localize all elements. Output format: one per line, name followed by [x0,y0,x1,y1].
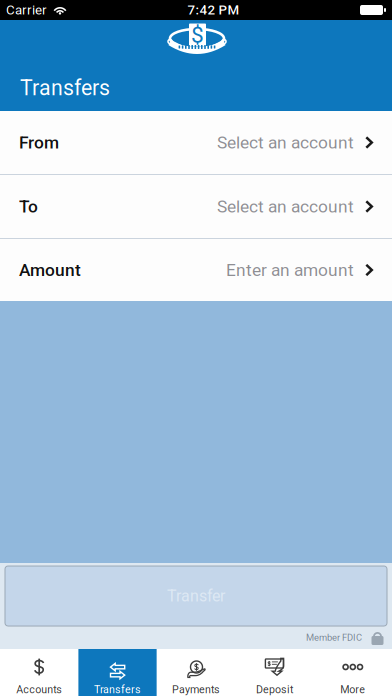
staticText: Accounts [16,683,62,696]
staticText: $ [191,22,204,48]
button[interactable]: From [0,111,392,174]
staticText: Select an account [217,132,354,153]
button[interactable]: Deposit [235,649,314,696]
button[interactable]: To [0,175,392,238]
staticText: Member FDIC [306,632,362,643]
button[interactable]: Transfer [0,566,392,626]
staticText: Deposit [256,683,293,696]
staticText: More [340,683,365,696]
button[interactable]: Accounts [0,649,78,696]
staticText: Carrier [6,2,47,18]
staticText: 7:42 PM [187,2,239,18]
staticText: From [19,132,59,153]
staticText: To [19,196,38,217]
button[interactable]: More [314,649,392,696]
button[interactable]: Transfers [78,649,157,696]
staticText: Transfer [167,587,225,605]
button[interactable]: Payments [157,649,235,696]
button[interactable]: Amount [0,239,392,301]
staticText: Payments [172,683,220,696]
staticText: Enter an amount [226,260,354,280]
staticText: Transfers [94,683,141,696]
staticText: Select an account [217,196,354,217]
staticText: Amount [19,260,81,280]
staticText: Transfers [20,75,110,100]
